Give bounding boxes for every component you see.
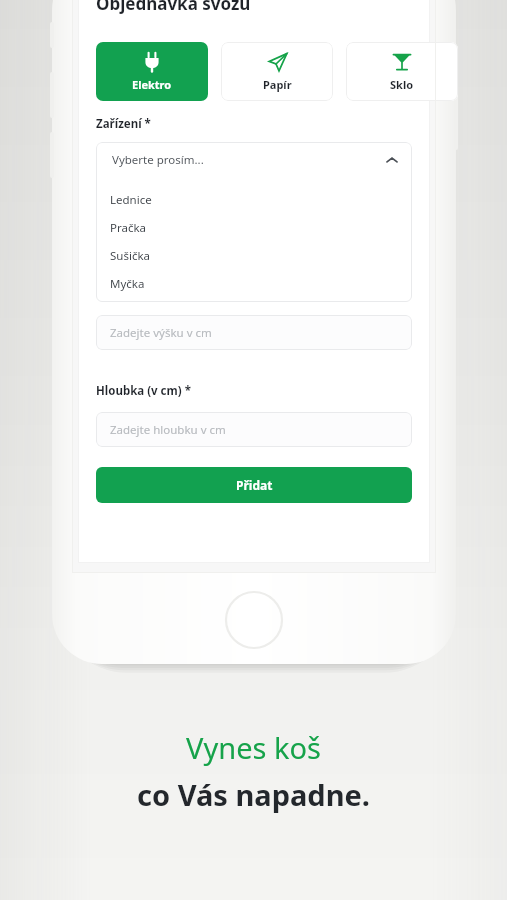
button[interactable]: Lednice bbox=[96, 186, 412, 214]
button[interactable]: Myčka bbox=[96, 270, 412, 298]
staticText: Zadejte výšku v cm bbox=[110, 325, 212, 341]
button[interactable]: Mikrovlnka bbox=[96, 298, 412, 302]
staticText: Papír bbox=[263, 77, 292, 92]
staticText: Vynes koš bbox=[186, 728, 321, 767]
button[interactable]: Přidat bbox=[96, 467, 412, 503]
staticText: Elektro bbox=[132, 77, 172, 92]
button[interactable]: Papír bbox=[221, 42, 333, 101]
staticText: Vyberte prosím... bbox=[112, 152, 204, 168]
button[interactable]: Sušička bbox=[96, 242, 412, 270]
staticText: Objednávka svozu bbox=[96, 0, 251, 15]
staticText: Přidat bbox=[236, 477, 273, 493]
staticText: Myčka bbox=[110, 276, 145, 292]
staticText: Pračka bbox=[110, 220, 147, 236]
staticText: co Vás napadne. bbox=[137, 775, 370, 814]
button[interactable]: Sklo bbox=[346, 42, 458, 101]
button[interactable]: Zadejte výšku v cm bbox=[96, 315, 412, 350]
button[interactable]: Vyberte prosím... bbox=[96, 142, 412, 178]
button[interactable]: Pračka bbox=[96, 214, 412, 242]
staticText: Zadejte hloubku v cm bbox=[110, 422, 226, 438]
staticText: Sušička bbox=[110, 248, 151, 264]
button[interactable]: Elektro bbox=[96, 42, 208, 101]
staticText: Lednice bbox=[110, 192, 152, 208]
staticText: Hloubka (v cm) * bbox=[96, 383, 191, 399]
other: Collapse bbox=[386, 154, 398, 166]
staticText: Zařízení * bbox=[96, 116, 151, 132]
button[interactable]: Zadejte hloubku v cm bbox=[96, 412, 412, 447]
staticText: Sklo bbox=[390, 77, 414, 92]
other: Home bbox=[224, 590, 284, 650]
